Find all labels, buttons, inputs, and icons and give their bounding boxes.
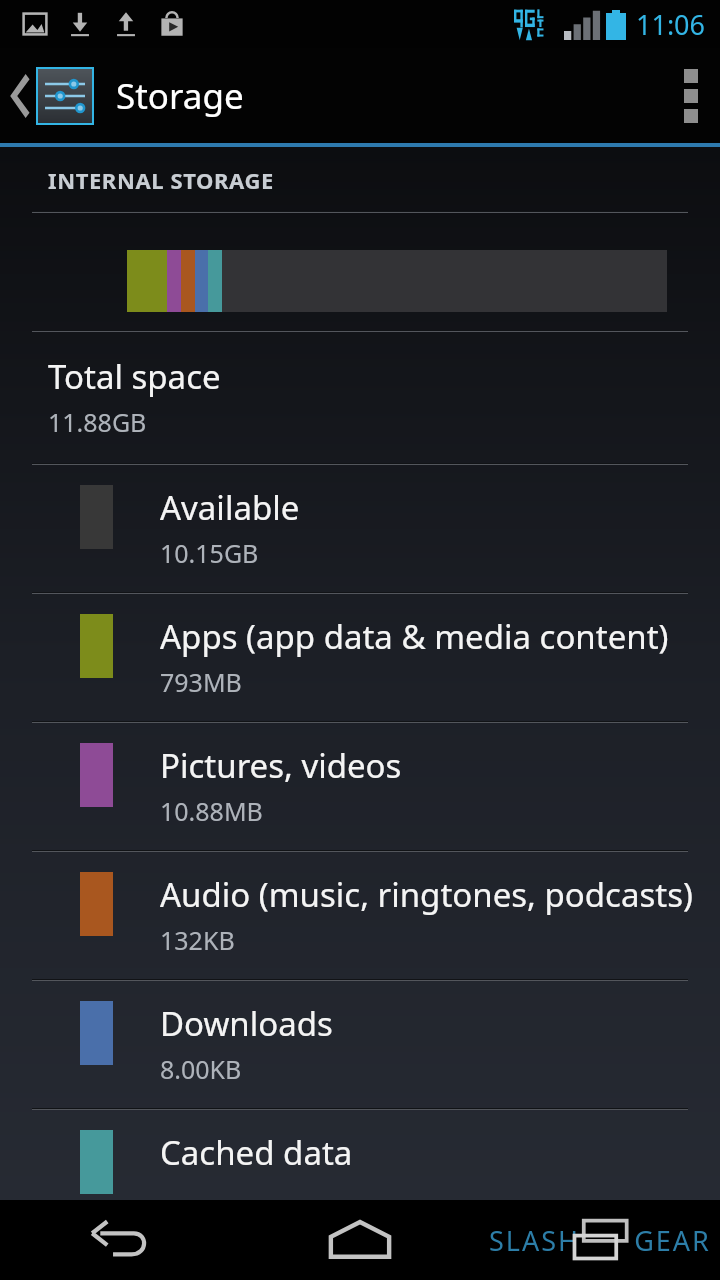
staticText: 11.88GB (48, 405, 147, 439)
staticText: Downloads (160, 1001, 333, 1046)
staticText: 793MB (160, 665, 242, 699)
button[interactable]: Downloads (0, 981, 720, 1108)
button[interactable]: Total space (0, 332, 720, 463)
staticText: SLASH GEAR (489, 1222, 711, 1259)
staticText: Audio (music, ringtones, podcasts) (160, 872, 693, 917)
button[interactable]: Cached data (0, 1110, 720, 1216)
button[interactable]: More options (662, 51, 720, 141)
button[interactable]: Recent apps (480, 1200, 720, 1280)
staticText: Cached data (160, 1130, 353, 1175)
staticText: Storage (116, 72, 244, 120)
staticText: Pictures, videos (160, 743, 402, 788)
staticText: INTERNAL STORAGE (48, 165, 274, 195)
button[interactable]: Back (0, 1200, 240, 1280)
button[interactable]: Apps (app data & media content) (0, 594, 720, 721)
staticText: Available (160, 485, 300, 530)
button[interactable]: Navigate up (0, 57, 254, 135)
button[interactable]: Available (0, 465, 720, 592)
staticText: 10.88MB (160, 794, 263, 828)
staticText: Total space (48, 354, 221, 399)
staticText: 8.00KB (160, 1052, 242, 1086)
staticText: 132KB (160, 923, 235, 957)
staticText: Apps (app data & media content) (160, 614, 669, 659)
staticText: 10.15GB (160, 536, 259, 570)
button[interactable]: Home (240, 1200, 480, 1280)
staticText: 11:06 (636, 6, 706, 43)
button[interactable]: Pictures, videos (0, 723, 720, 850)
button[interactable]: Audio (music, ringtones, podcasts) (0, 852, 720, 979)
